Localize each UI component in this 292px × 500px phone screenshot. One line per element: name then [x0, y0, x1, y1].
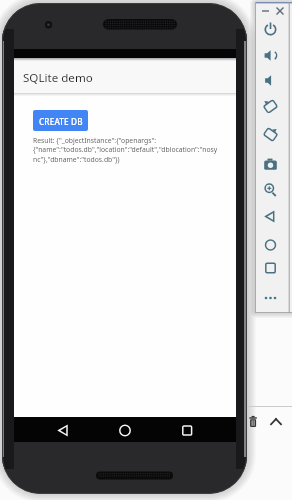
button[interactable]	[259, 212, 283, 232]
button[interactable]	[174, 417, 200, 442]
staticText: CREATE DB	[39, 116, 83, 127]
button[interactable]	[259, 116, 283, 136]
button[interactable]	[259, 68, 283, 88]
button[interactable]	[50, 417, 76, 442]
button[interactable]	[245, 410, 292, 434]
staticText: SQLite demo	[23, 70, 93, 86]
staticText: Result: {"_objectInstance":{"openargs":	[33, 136, 156, 145]
button[interactable]	[259, 260, 283, 280]
button[interactable]	[259, 20, 283, 40]
button[interactable]: CREATE DB	[33, 110, 88, 131]
button[interactable]	[259, 140, 283, 160]
button[interactable]	[112, 417, 138, 442]
button[interactable]	[259, 92, 283, 112]
button[interactable]	[259, 44, 283, 64]
button[interactable]	[259, 284, 283, 304]
button[interactable]	[259, 188, 283, 208]
button[interactable]	[259, 164, 283, 184]
staticText: {"name":"todos.db","location":"default",…	[33, 145, 218, 154]
button[interactable]	[259, 236, 283, 256]
staticText: nc"},"dbname":"todos.db"})	[33, 155, 120, 164]
